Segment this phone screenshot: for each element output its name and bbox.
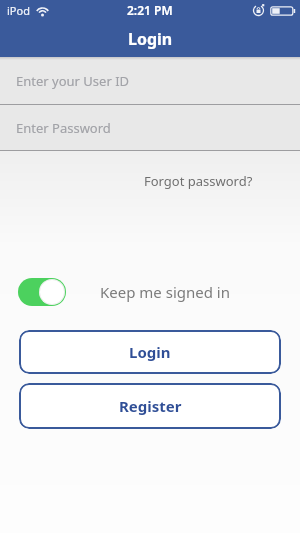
button[interactable]: Login [19, 330, 281, 374]
staticText: Forgot password? [144, 172, 253, 190]
staticText: Enter Password [16, 119, 111, 137]
staticText: Login [129, 342, 171, 362]
button[interactable]: Forgot password? [144, 172, 253, 190]
button[interactable] [18, 278, 66, 306]
staticText: Enter your User ID [16, 72, 130, 90]
staticText: Register [119, 396, 182, 416]
button[interactable]: Register [19, 383, 281, 429]
button[interactable]: Enter Password [0, 105, 300, 150]
button[interactable]: Enter your User ID [0, 57, 300, 104]
staticText: Keep me signed in [100, 282, 230, 302]
staticText: Login [128, 28, 173, 50]
staticText: iPod [7, 3, 30, 18]
staticText: 2:21 PM [127, 2, 173, 18]
